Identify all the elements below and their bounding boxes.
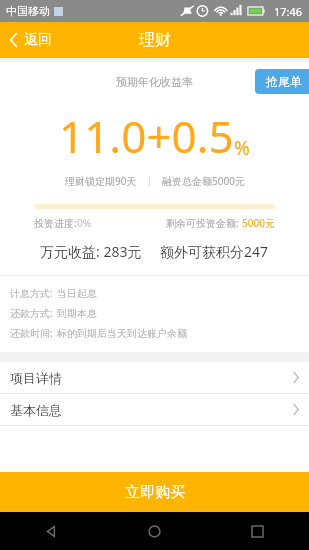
staticText: 万元收益: 283元: [40, 242, 142, 261]
staticText: 额外可获积分247: [160, 242, 269, 261]
staticText: 预期年化收益率: [116, 75, 193, 89]
staticText: 剩余可投资金额:: [166, 216, 239, 230]
staticText: 0%: [77, 216, 92, 230]
staticText: 当日起息: [57, 287, 97, 300]
staticText: 基本信息: [10, 402, 62, 418]
staticText: 17:46: [274, 4, 303, 19]
staticText: %: [234, 135, 250, 161]
staticText: 理财: [139, 30, 171, 50]
staticText: 5000元: [242, 216, 275, 230]
button[interactable]: Back: [0, 512, 103, 550]
staticText: 立即购买: [125, 483, 185, 502]
button[interactable]: 立即购买: [0, 472, 309, 512]
staticText: 投资进度:: [34, 216, 77, 230]
button[interactable]: Recents: [206, 512, 309, 550]
button[interactable]: 项目详情: [0, 362, 309, 393]
staticText: 还款方式:: [10, 306, 53, 320]
staticText: 理财锁定期90天: [65, 174, 137, 188]
staticText: 抢尾单: [266, 74, 302, 89]
staticText: 还款时间:: [10, 326, 53, 340]
staticText: 项目详情: [10, 370, 62, 386]
staticText: 融资总金额5000元: [162, 174, 245, 188]
button[interactable]: Home: [103, 512, 206, 550]
staticText: 11.0+0.5: [59, 106, 234, 166]
button[interactable]: 基本信息: [0, 394, 309, 425]
staticText: 返回: [24, 31, 52, 49]
staticText: 标的到期后当天到达账户余额: [57, 327, 187, 340]
staticText: 中国移动: [6, 4, 50, 18]
staticText: 到期本息: [57, 307, 97, 320]
button[interactable]: 返回: [0, 25, 62, 55]
staticText: 计息方式:: [10, 286, 53, 300]
button[interactable]: 抢尾单: [255, 69, 309, 94]
